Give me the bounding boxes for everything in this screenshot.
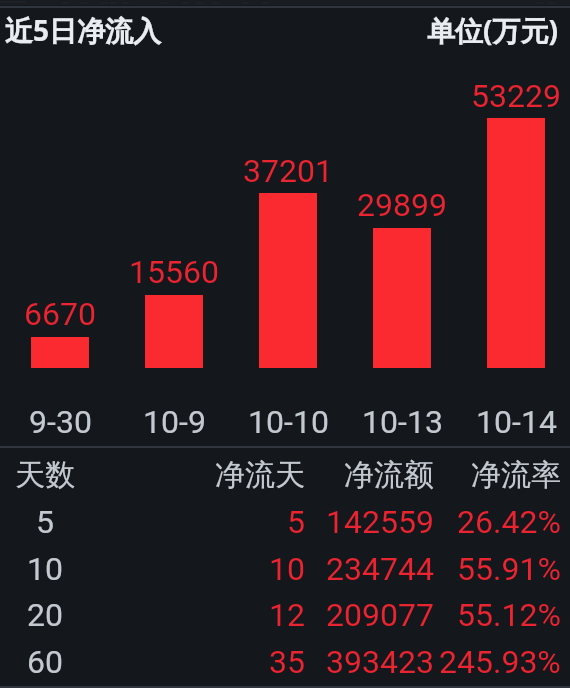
staticText: 37201 xyxy=(243,152,333,188)
staticText: 53229 xyxy=(471,77,561,113)
staticText: 234744 xyxy=(326,550,434,588)
button[interactable]: 60 xyxy=(0,639,570,685)
staticText: 净流率 xyxy=(471,456,561,494)
button[interactable]: 单位(万元) xyxy=(427,11,558,49)
staticText: 55.91% xyxy=(457,550,561,588)
staticText: 245.93% xyxy=(439,643,561,681)
staticText: 6670 xyxy=(24,295,96,331)
staticText: 天数 xyxy=(15,456,75,494)
staticText: 10-14 xyxy=(476,403,557,437)
staticText: 393423 xyxy=(326,643,434,681)
staticText: 10-13 xyxy=(362,403,443,437)
staticText: 10 xyxy=(27,550,63,588)
staticText: 55.12% xyxy=(457,596,561,634)
staticText: 35 xyxy=(269,643,305,681)
staticText: 26.42% xyxy=(457,503,561,541)
staticText: 10-10 xyxy=(248,403,329,437)
staticText: 9-30 xyxy=(29,403,92,437)
staticText: 209077 xyxy=(326,596,434,634)
staticText: 净流天 xyxy=(215,456,305,494)
button[interactable]: 20 xyxy=(0,592,570,638)
staticText: 15560 xyxy=(129,253,219,289)
staticText: 净流额 xyxy=(344,456,434,494)
button[interactable]: 近5日净流入 xyxy=(5,11,162,49)
button[interactable]: 5 xyxy=(0,499,570,545)
staticText: 29899 xyxy=(357,186,447,222)
button[interactable]: 天数 xyxy=(0,452,570,498)
staticText: 12 xyxy=(269,596,305,634)
staticText: 10-9 xyxy=(143,403,206,437)
staticText: 60 xyxy=(27,643,63,681)
other: 近5日净流入柱状图 xyxy=(0,0,570,688)
staticText: 10 xyxy=(269,550,305,588)
staticText: 20 xyxy=(27,596,63,634)
staticText: 142559 xyxy=(326,503,434,541)
button[interactable]: 10 xyxy=(0,546,570,592)
staticText: 5 xyxy=(36,503,54,541)
staticText: 5 xyxy=(287,503,305,541)
